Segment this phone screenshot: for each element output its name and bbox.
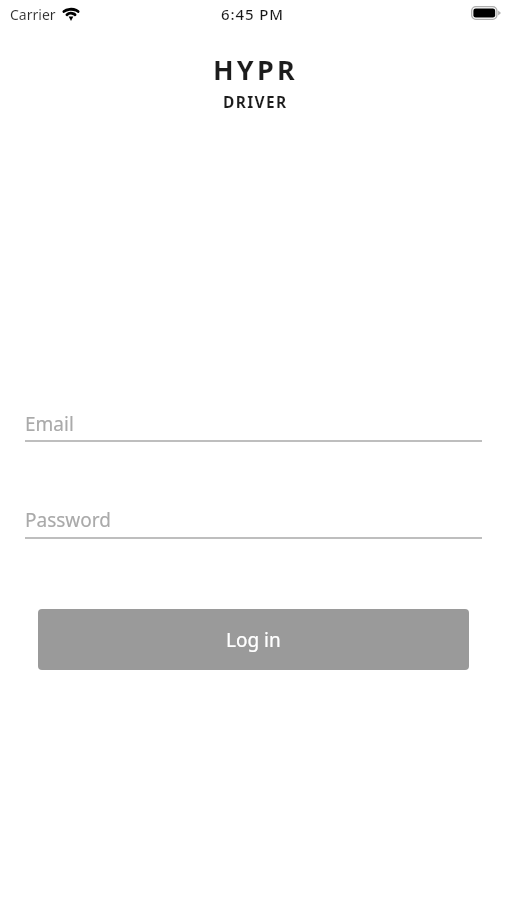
other: Wi-Fi signal xyxy=(61,7,81,21)
button[interactable]: Email xyxy=(25,411,482,442)
staticText: DRIVER xyxy=(223,91,288,112)
staticText: Email xyxy=(25,411,74,437)
staticText: 6:45 PM xyxy=(221,4,284,24)
staticText: Carrier xyxy=(10,5,56,24)
button[interactable]: Password xyxy=(25,507,482,539)
staticText: Log in xyxy=(226,627,281,653)
staticText: Password xyxy=(25,507,111,533)
staticText: HYPR xyxy=(213,51,298,88)
button[interactable]: Log in xyxy=(38,609,469,670)
other: Battery full xyxy=(471,6,501,20)
